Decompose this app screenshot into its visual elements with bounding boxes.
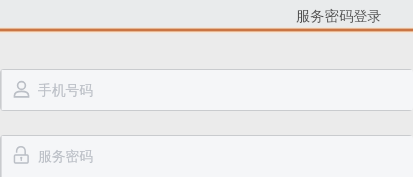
button[interactable]: Service password — [0, 135, 413, 177]
button[interactable]: 服务密码登录 — [276, 0, 413, 29]
other: Phone number — [14, 81, 29, 97]
staticText: 服务密码登录 — [296, 7, 382, 25]
staticText: 服务密码 — [38, 148, 94, 165]
button[interactable]: Phone number — [0, 69, 413, 111]
staticText: 手机号码 — [38, 82, 94, 99]
other: Service password — [14, 147, 29, 163]
